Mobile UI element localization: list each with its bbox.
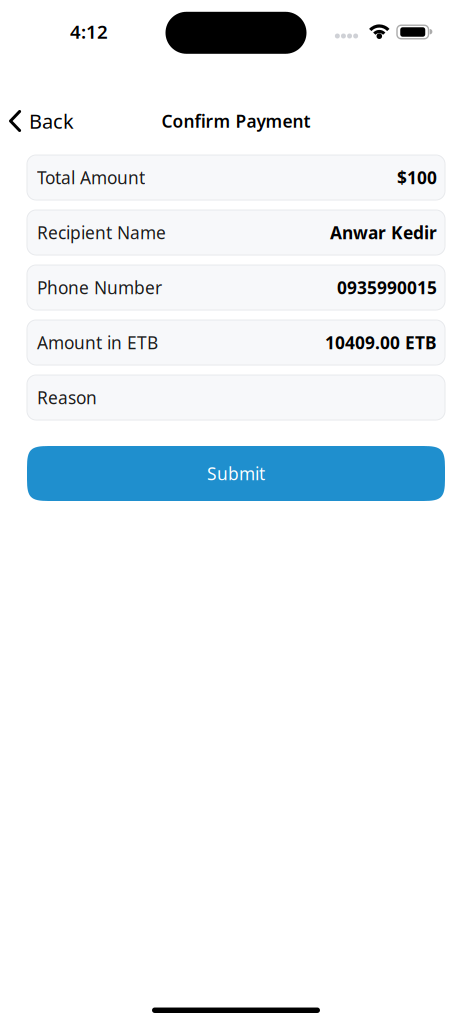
staticText: $100	[397, 166, 437, 189]
staticText: 10409.00 ETB	[325, 331, 437, 354]
staticText: Phone Number	[37, 276, 162, 299]
button[interactable]: Submit	[27, 446, 445, 501]
staticText: Submit	[207, 462, 265, 485]
button[interactable]: Phone Number	[27, 265, 445, 310]
staticText: 0935990015	[337, 276, 437, 299]
staticText: Total Amount	[37, 166, 145, 189]
staticText: Confirm Payment	[161, 109, 310, 132]
staticText: Reason	[37, 386, 97, 409]
staticText: Amount in ETB	[37, 331, 158, 354]
staticText: 4:12	[70, 19, 108, 44]
button[interactable]: Amount in ETB	[27, 320, 445, 365]
button[interactable]: Reason	[27, 375, 445, 420]
staticText: Anwar Kedir	[330, 221, 437, 244]
button[interactable]: Recipient Name	[27, 210, 445, 255]
staticText: Back	[29, 108, 74, 134]
button[interactable]: Back	[0, 101, 84, 141]
button[interactable]: Total Amount	[27, 155, 445, 200]
staticText: Recipient Name	[37, 221, 166, 244]
